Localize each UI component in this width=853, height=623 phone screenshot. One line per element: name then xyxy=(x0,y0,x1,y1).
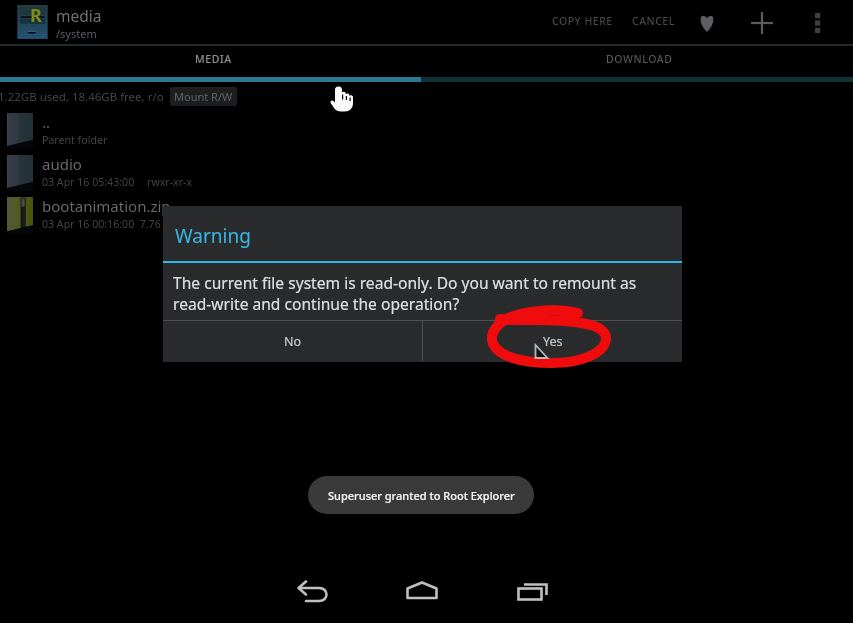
button[interactable]: More options xyxy=(803,8,833,38)
staticText: read-write and continue the operation? xyxy=(173,293,460,314)
button[interactable]: Mount R/W xyxy=(170,87,237,106)
button[interactable]: Navigate up xyxy=(8,0,138,46)
staticText: CANCEL xyxy=(632,14,675,28)
staticText: bootanimation.zip xyxy=(42,196,171,216)
staticText: COPY HERE xyxy=(552,14,613,28)
staticText: DOWNLOAD xyxy=(606,52,673,66)
button[interactable]: Add xyxy=(747,8,777,38)
button[interactable]: Recent apps xyxy=(508,568,558,612)
staticText: Mount R/W xyxy=(174,89,233,104)
staticText: R xyxy=(30,3,42,28)
staticText: Parent folder xyxy=(42,133,108,147)
staticText: 03 Apr 16 05:43:00 xyxy=(42,175,135,189)
button[interactable]: DOWNLOAD xyxy=(426,44,853,74)
staticText: The current file system is read-only. Do… xyxy=(173,272,637,293)
button[interactable]: Favorite xyxy=(692,8,722,38)
button[interactable]: .. xyxy=(0,111,853,153)
button[interactable]: COPY HERE xyxy=(545,0,619,46)
staticText: rwxr-xr-x xyxy=(147,175,193,189)
button[interactable]: Yes xyxy=(423,321,682,361)
button[interactable]: Superuser granted to Root Explorer xyxy=(308,476,534,514)
button[interactable]: Back xyxy=(288,568,338,612)
staticText: Warning xyxy=(175,223,251,249)
staticText: Yes xyxy=(543,333,563,350)
button[interactable]: audio xyxy=(0,153,853,195)
button[interactable]: No xyxy=(163,321,422,361)
staticText: No xyxy=(284,333,302,350)
staticText: MEDIA xyxy=(195,52,232,66)
button[interactable]: Home xyxy=(398,568,446,612)
button[interactable]: CANCEL xyxy=(624,0,682,46)
staticText: .. xyxy=(42,112,51,132)
staticText: 03 Apr 16 00:16:00 7.76 xyxy=(42,217,161,231)
staticText: 1.22GB used, 18.46GB free, r/o xyxy=(0,89,164,105)
staticText: /system xyxy=(56,26,97,41)
button[interactable]: bootanimation.zip xyxy=(0,195,853,237)
staticText: audio xyxy=(42,154,82,174)
button[interactable]: MEDIA xyxy=(0,44,426,74)
staticText: media xyxy=(56,5,102,26)
staticText: Superuser granted to Root Explorer xyxy=(328,488,515,503)
